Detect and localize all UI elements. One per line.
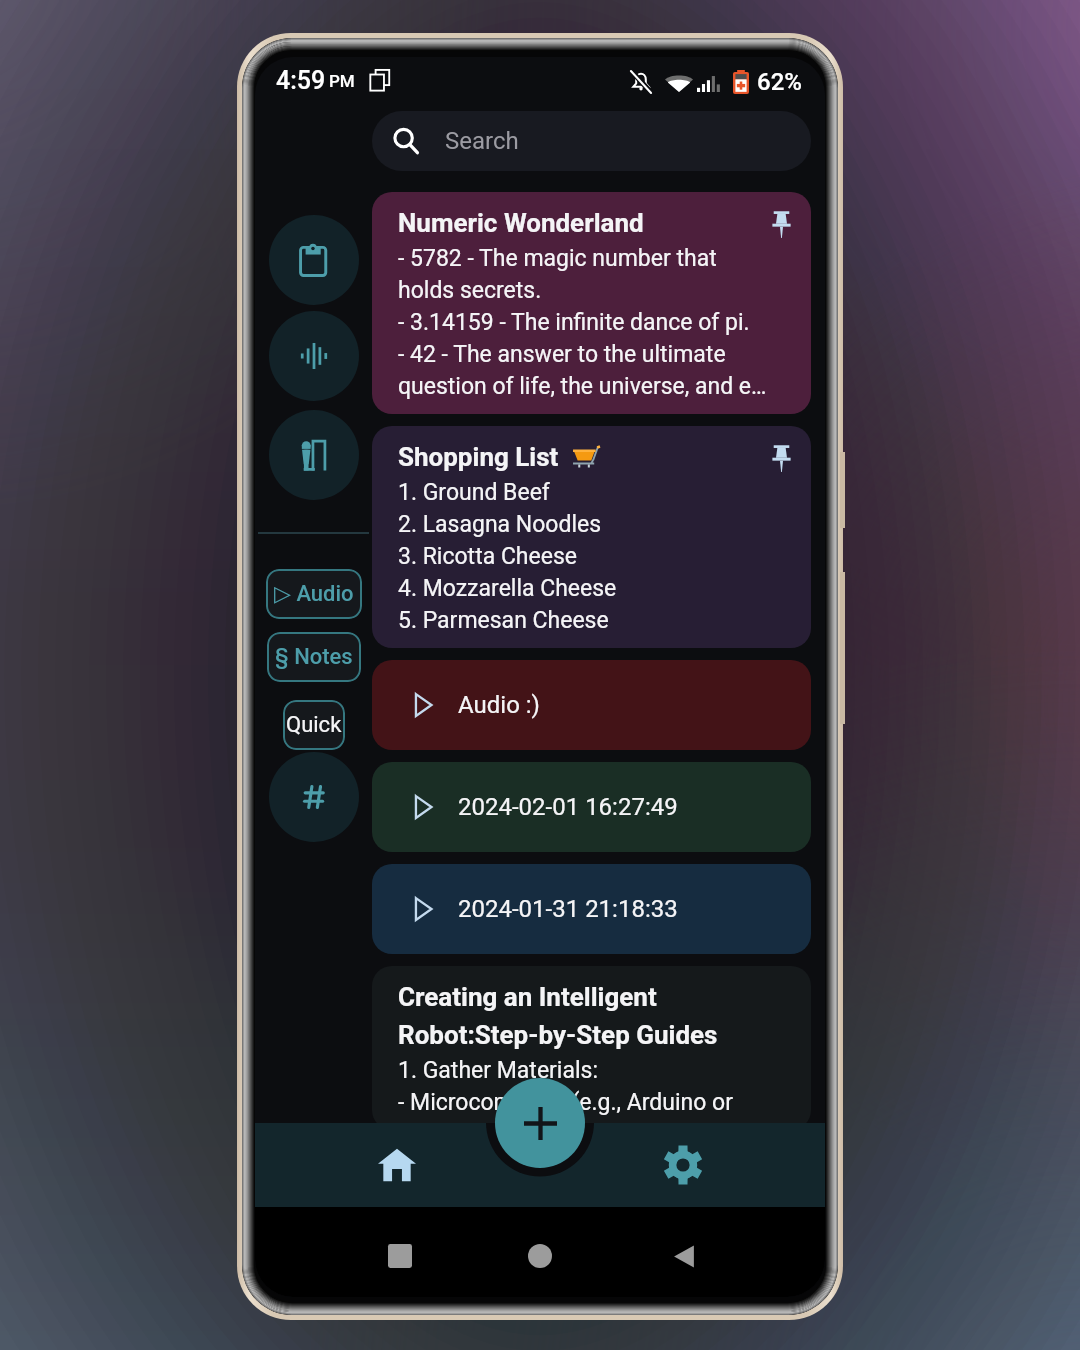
staticText: question of life, the universe, and e… xyxy=(398,373,767,400)
staticText: - 42 - The answer to the ultimate xyxy=(398,341,726,368)
staticText: Audio :) xyxy=(458,691,540,719)
staticText: 4. Mozzarella Cheese xyxy=(398,575,617,602)
button[interactable]: Home xyxy=(255,1123,539,1207)
button[interactable]: Numeric Wonderland xyxy=(372,192,811,414)
button[interactable]: 2024-02-01 16:27:49 xyxy=(372,762,811,852)
staticText: Creating an Intelligent xyxy=(398,982,657,1012)
button[interactable]: Audio waveform xyxy=(269,311,359,401)
staticText: Shopping List xyxy=(398,442,565,472)
staticText: Search xyxy=(445,127,519,155)
staticText: ▷ Audio xyxy=(274,581,354,607)
button[interactable]: § Notes xyxy=(267,632,361,682)
staticText: Numeric Wonderland xyxy=(398,208,644,238)
staticText: - 3.14159 - The infinite dance of pi. xyxy=(398,309,750,336)
staticText: - 5782 - The magic number that xyxy=(398,245,717,272)
staticText: 4:59 xyxy=(276,66,326,95)
staticText: PM xyxy=(329,71,355,91)
staticText: - Microcontroller (e.g., Arduino or xyxy=(398,1089,734,1116)
staticText: 2024-02-01 16:27:49 xyxy=(458,793,678,821)
button[interactable]: Back xyxy=(656,1228,712,1284)
staticText: holds secrets. xyxy=(398,277,542,304)
staticText: 1. Ground Beef xyxy=(398,479,550,506)
button[interactable]: Home button xyxy=(512,1228,568,1284)
staticText: 1. Gather Materials: xyxy=(398,1057,599,1084)
button[interactable]: Add note xyxy=(495,1078,585,1168)
staticText: § Notes xyxy=(275,644,353,670)
staticText: 2024-01-31 21:18:33 xyxy=(458,895,678,923)
button[interactable]: ▷ Audio xyxy=(266,569,362,619)
button[interactable]: Voice note xyxy=(269,410,359,500)
button[interactable]: Creating an Intelligent xyxy=(372,966,811,1130)
button[interactable]: Settings xyxy=(541,1123,825,1207)
button[interactable]: Shopping List xyxy=(372,426,811,648)
button[interactable]: 2024-01-31 21:18:33 xyxy=(372,864,811,954)
button[interactable]: Audio :) xyxy=(372,660,811,750)
button[interactable]: Clipboard notes xyxy=(269,215,359,305)
button[interactable]: Quick xyxy=(283,700,345,750)
staticText: 3. Ricotta Cheese xyxy=(398,543,577,570)
button[interactable]: Recents xyxy=(372,1228,428,1284)
button[interactable]: Tags xyxy=(269,752,359,842)
button[interactable]: Search xyxy=(372,111,811,171)
staticText: 2. Lasagna Noodles xyxy=(398,511,602,538)
staticText: 62% xyxy=(757,68,802,96)
staticText: 5. Parmesan Cheese xyxy=(398,607,609,634)
staticText: Robot:Step-by-Step Guides xyxy=(398,1020,718,1050)
staticText: Quick xyxy=(286,712,342,738)
